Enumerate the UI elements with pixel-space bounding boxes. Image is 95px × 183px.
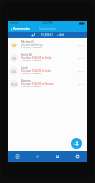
staticText: 1: [34, 33, 36, 37]
staticText: MF: [12, 44, 17, 48]
staticText: 3:02 PM: [42, 21, 53, 25]
staticText: 1 group, 1 default: [21, 71, 42, 74]
staticText: Jul 12: [78, 43, 85, 46]
staticText: RCM: [11, 83, 18, 87]
staticText: Roommates: [13, 27, 31, 31]
staticText: EM: [12, 57, 17, 61]
button[interactable]: Friends: [47, 151, 67, 162]
button[interactable]: RCM: [8, 77, 87, 90]
staticText: carrier: [10, 21, 19, 25]
button[interactable]: LEA: [8, 64, 87, 77]
button[interactable]: MF: [8, 38, 87, 51]
staticText: Jul 12: [78, 69, 85, 72]
staticText: You owe $144.00 to Emily: [21, 56, 52, 59]
staticText: Roman: [21, 79, 31, 83]
staticText: Jul 12: [78, 82, 85, 85]
button[interactable]: Calculator: [27, 151, 47, 162]
staticText: LEA: [11, 70, 17, 74]
button[interactable]: $1,008.41: [41, 33, 53, 37]
button[interactable]: 1: [30, 33, 37, 37]
staticText: 1 group, 1 default: [21, 84, 42, 87]
button[interactable]: + Add: [57, 33, 65, 37]
staticText: Roommates: [39, 27, 57, 31]
staticText: 1 group, 1 default: [21, 58, 42, 61]
staticText: Michael F.: [21, 40, 35, 44]
staticText: You owe $144.00 to Roman: [21, 82, 54, 85]
staticText: You owe $144.00 to Leah: [21, 69, 51, 72]
staticText: Emily M.: [21, 53, 33, 57]
button[interactable]: Roommates: [8, 27, 32, 31]
button[interactable]: Settings: [67, 151, 87, 162]
staticText: you are settled up: [21, 43, 43, 46]
button[interactable]: Add friend: [71, 138, 82, 149]
staticText: Jul 12: [78, 56, 85, 59]
staticText: Leah: [21, 66, 28, 70]
staticText: 1 group, 1 default: [21, 45, 42, 48]
button[interactable]: Bills: [8, 151, 27, 162]
button[interactable]: EM: [8, 51, 87, 64]
